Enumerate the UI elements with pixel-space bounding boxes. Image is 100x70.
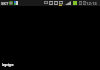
button[interactable]: Watermark (2, 63, 14, 67)
staticText: logotype (2, 63, 14, 67)
staticText: SKT (1, 1, 9, 7)
staticText: 12:13 (86, 1, 97, 7)
